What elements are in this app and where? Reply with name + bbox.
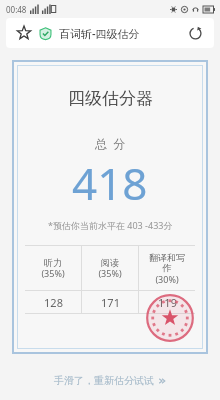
button[interactable]: 手滑了，重新估分试试 (44, 370, 176, 391)
staticText: 418 (72, 153, 148, 213)
staticText: 128 (44, 295, 63, 310)
staticText: 00:48 (6, 4, 27, 15)
staticText: *预估你当前水平在 403 -433分 (48, 219, 173, 231)
staticText: 听力 (35%) (41, 257, 65, 279)
staticText: 171 (101, 295, 120, 310)
staticText: 总 分 (95, 135, 126, 151)
staticText: 119 (158, 295, 177, 310)
staticText: 百词斩-四级估分 (59, 26, 140, 41)
staticText: 翻译和写 作 (30%) (149, 252, 185, 285)
button[interactable]: Favorite (15, 24, 33, 42)
button[interactable]: Refresh (185, 23, 205, 43)
staticText: 手滑了，重新估分试试 (54, 374, 154, 387)
staticText: 四级估分器 (68, 88, 153, 109)
staticText: 阅读 (35%) (98, 257, 122, 279)
